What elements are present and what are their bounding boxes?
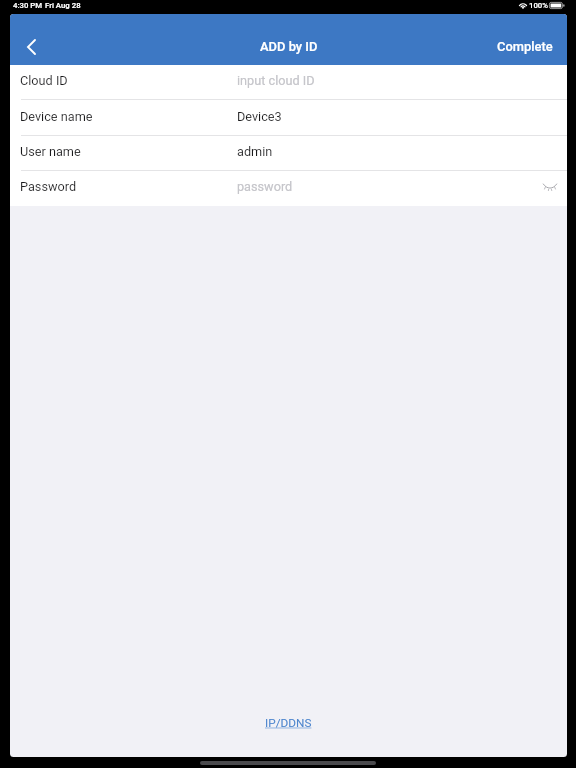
staticText: Complete <box>497 39 553 54</box>
staticText: IP/DDNS <box>265 716 312 730</box>
button[interactable]: Show password <box>535 174 565 204</box>
button[interactable]: Complete <box>483 14 567 65</box>
staticText: 100% <box>529 1 549 10</box>
staticText: ADD by ID <box>260 39 318 54</box>
staticText: password <box>237 179 293 194</box>
staticText: Fri Aug 28 <box>45 1 81 10</box>
staticText: User name <box>20 144 81 159</box>
staticText: input cloud ID <box>237 73 315 88</box>
button[interactable]: Device name <box>10 100 567 136</box>
staticText: 4:30 PM <box>13 1 43 10</box>
staticText: admin <box>237 144 273 159</box>
staticText: Device3 <box>237 109 282 124</box>
button[interactable]: IP/DDNS <box>255 711 322 735</box>
button[interactable]: Password <box>10 171 567 206</box>
staticText: Password <box>20 179 77 194</box>
button[interactable]: Cloud ID <box>10 65 567 100</box>
button[interactable]: Back <box>13 29 49 65</box>
button[interactable]: User name <box>10 136 567 171</box>
staticText: Device name <box>20 109 93 124</box>
staticText: Cloud ID <box>20 73 68 88</box>
